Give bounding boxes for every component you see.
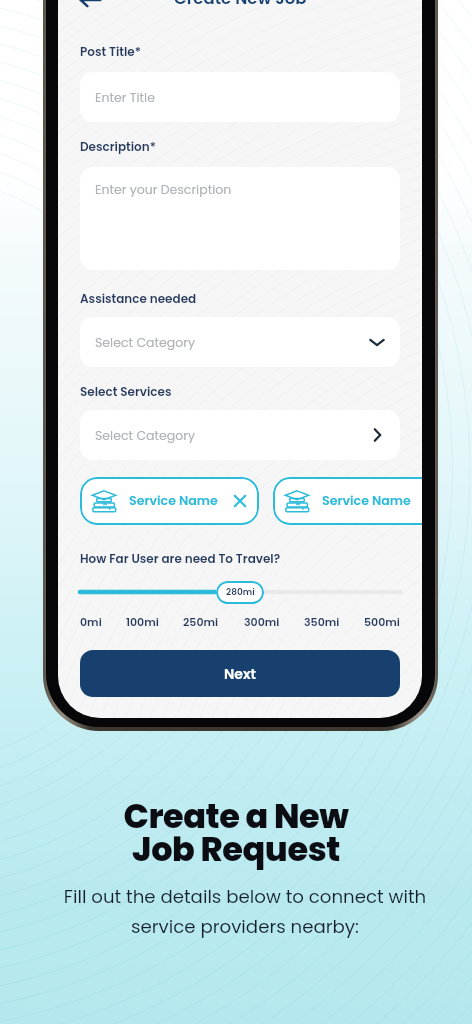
staticText: 0mi: [80, 614, 102, 629]
staticText: Enter Title: [95, 89, 155, 106]
button[interactable]: Select Category: [80, 410, 400, 460]
staticText: 100mi: [126, 614, 159, 629]
staticText: Next: [224, 664, 256, 684]
button[interactable]: Back: [78, 0, 102, 12]
button[interactable]: Select Category: [80, 317, 400, 367]
staticText: Service Name: [322, 492, 411, 510]
staticText: Assistance needed: [80, 290, 197, 307]
button[interactable]: 280mi: [216, 581, 264, 604]
staticText: 300mi: [244, 614, 280, 629]
button[interactable]: Next: [80, 650, 400, 697]
staticText: 350mi: [304, 614, 340, 629]
staticText: Description*: [80, 138, 156, 155]
staticText: 500mi: [364, 614, 400, 629]
staticText: Enter your Description: [95, 181, 232, 198]
button[interactable]: Remove service: [228, 489, 252, 513]
staticText: Select Category: [95, 334, 195, 351]
staticText: Create New Job: [174, 0, 307, 10]
button[interactable]: Enter Title: [80, 72, 400, 122]
button[interactable]: Enter your Description: [80, 167, 400, 270]
staticText: 280mi: [226, 586, 255, 599]
staticText: Select Category: [95, 427, 195, 444]
staticText: How Far User are need To Travel?: [80, 550, 281, 567]
staticText: Service Name: [129, 492, 218, 510]
button[interactable]: Service Name: [80, 477, 259, 525]
staticText: Fill out the details below to connect wi…: [9, 884, 472, 939]
staticText: Post Title*: [80, 43, 141, 60]
staticText: Create a New Job Request: [0, 793, 472, 873]
staticText: Select Services: [80, 383, 172, 400]
staticText: 250mi: [183, 614, 219, 629]
button[interactable]: Service Name: [273, 477, 422, 525]
